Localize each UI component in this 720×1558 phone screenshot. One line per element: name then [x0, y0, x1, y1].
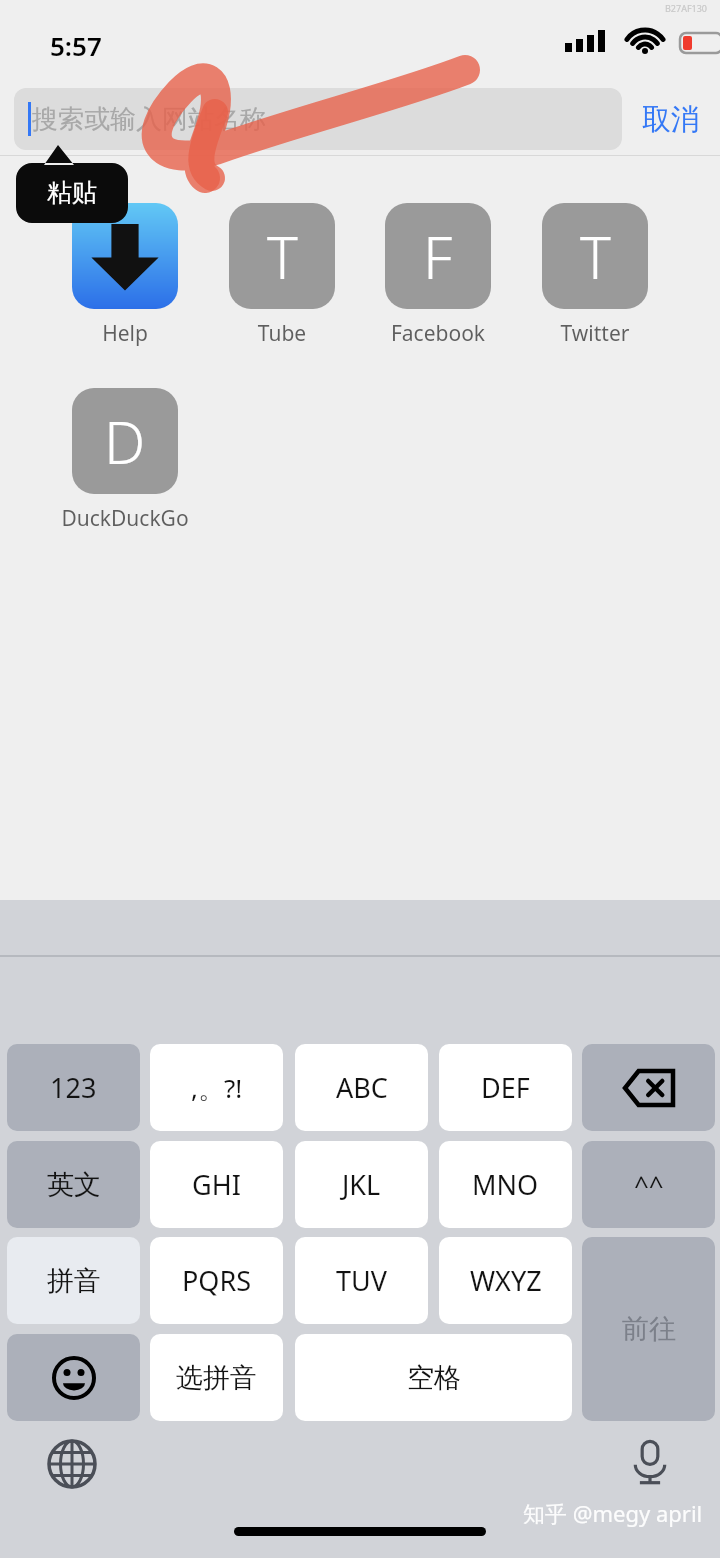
- button[interactable]: ABC: [295, 1044, 428, 1131]
- staticText: DEF: [481, 1069, 530, 1106]
- button[interactable]: 前往: [582, 1237, 715, 1421]
- staticText: JKL: [342, 1166, 381, 1203]
- staticText: 5:57: [50, 28, 102, 63]
- staticText: 123: [50, 1069, 97, 1106]
- staticText: 空格: [407, 1361, 461, 1395]
- staticText: ABC: [336, 1069, 388, 1106]
- staticText: 前往: [622, 1312, 676, 1346]
- staticText: 知乎 @megy april: [523, 1498, 703, 1528]
- staticText: WXYZ: [470, 1262, 542, 1299]
- button[interactable]: ,。?!: [150, 1044, 283, 1131]
- staticText: B27AF130: [665, 2, 708, 14]
- staticText: TUV: [336, 1262, 387, 1299]
- button[interactable]: 空格: [295, 1334, 572, 1421]
- button[interactable]: 选拼音: [150, 1334, 283, 1421]
- staticText: 英文: [47, 1168, 101, 1202]
- staticText: MNO: [472, 1166, 539, 1203]
- staticText: F: [423, 217, 453, 296]
- button[interactable]: Help: [56, 203, 194, 348]
- button[interactable]: PQRS: [150, 1237, 283, 1324]
- staticText: D: [104, 402, 146, 481]
- button[interactable]: 取消: [630, 88, 712, 150]
- staticText: ^^: [634, 1167, 664, 1202]
- button[interactable]: WXYZ: [439, 1237, 572, 1324]
- staticText: DuckDuckGo: [56, 504, 194, 533]
- button[interactable]: 粘贴: [16, 145, 128, 223]
- button[interactable]: TUV: [295, 1237, 428, 1324]
- button[interactable]: ^^: [582, 1141, 715, 1228]
- button[interactable]: T: [526, 203, 664, 348]
- button[interactable]: Switch keyboard: [40, 1432, 104, 1496]
- staticText: 粘贴: [47, 177, 97, 208]
- staticText: GHI: [192, 1166, 241, 1203]
- button[interactable]: T: [213, 203, 351, 348]
- button[interactable]: JKL: [295, 1141, 428, 1228]
- staticText: Help: [56, 319, 194, 348]
- button[interactable]: GHI: [150, 1141, 283, 1228]
- staticText: Facebook: [369, 319, 507, 348]
- staticText: Tube: [213, 319, 351, 348]
- button[interactable]: DEF: [439, 1044, 572, 1131]
- staticText: T: [580, 217, 611, 296]
- staticText: 搜索或输入网站名称: [32, 103, 266, 136]
- button[interactable]: 搜索或输入网站名称: [14, 88, 622, 150]
- button[interactable]: 123: [7, 1044, 140, 1131]
- button[interactable]: F: [369, 203, 507, 348]
- button[interactable]: D: [56, 388, 194, 533]
- button[interactable]: MNO: [439, 1141, 572, 1228]
- button[interactable]: Backspace: [582, 1044, 715, 1131]
- button[interactable]: 拼音: [7, 1237, 140, 1324]
- staticText: Twitter: [526, 319, 664, 348]
- button[interactable]: Voice input: [618, 1430, 682, 1494]
- staticText: 拼音: [47, 1264, 101, 1298]
- staticText: 取消: [642, 101, 700, 138]
- staticText: 选拼音: [176, 1361, 257, 1395]
- staticText: ,。?!: [191, 1070, 243, 1106]
- button[interactable]: Emoji: [7, 1334, 140, 1421]
- staticText: PQRS: [182, 1262, 252, 1299]
- button[interactable]: 英文: [7, 1141, 140, 1228]
- staticText: T: [267, 217, 298, 296]
